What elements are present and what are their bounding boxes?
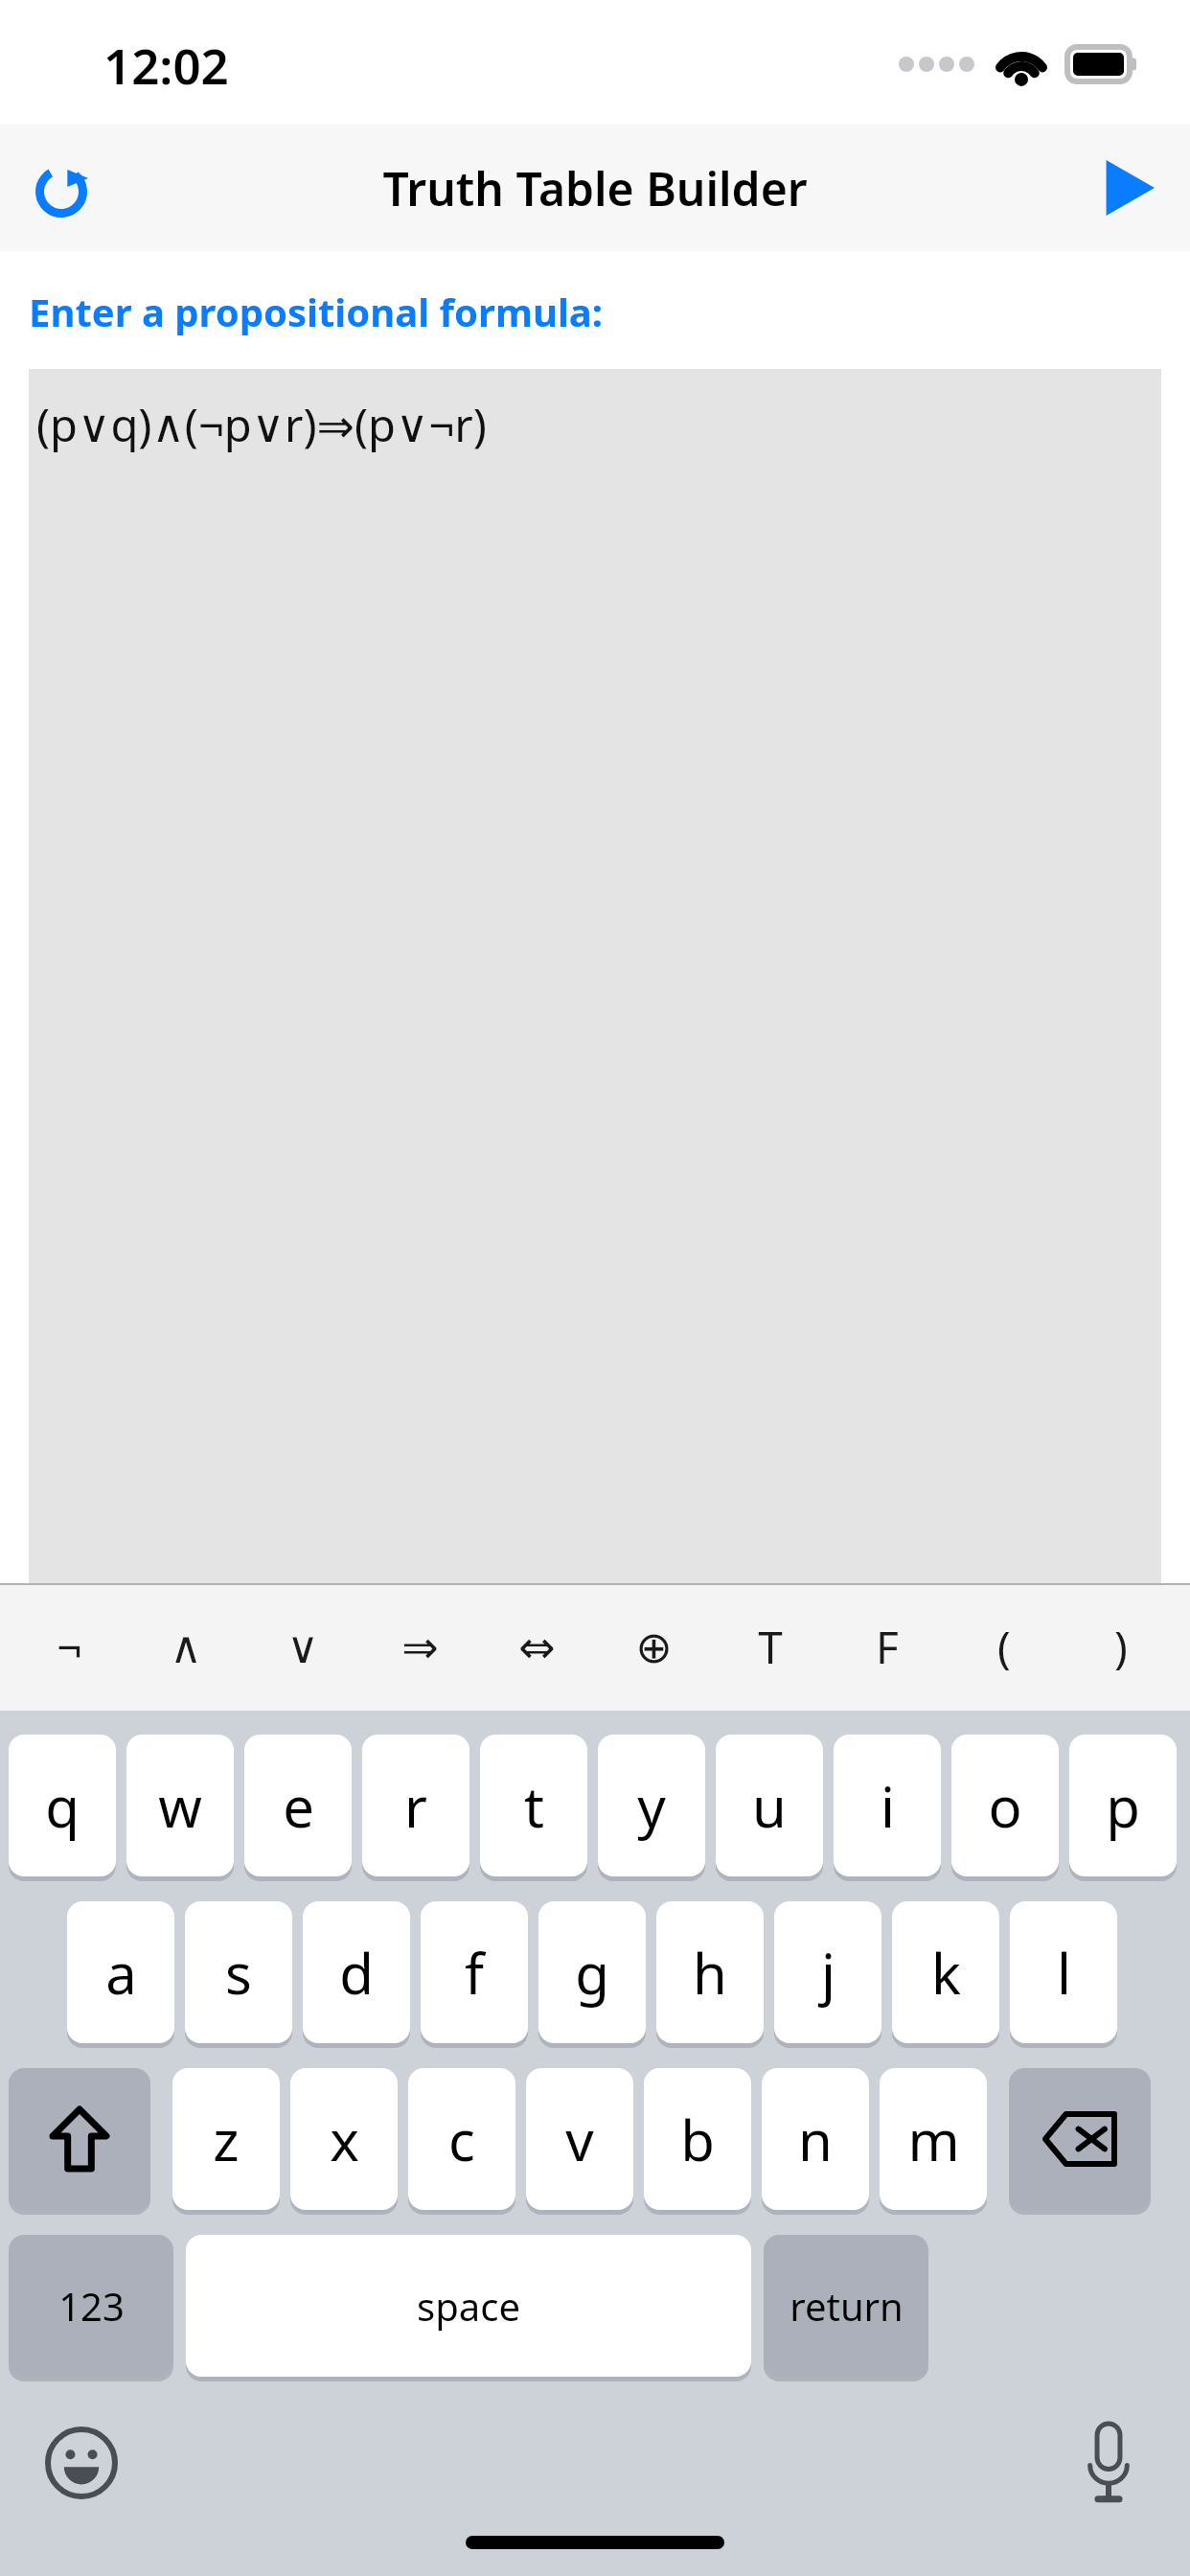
staticText: return <box>790 2280 904 2332</box>
staticText: y <box>637 1768 666 1844</box>
button[interactable]: i <box>834 1735 941 1876</box>
staticText: i <box>881 1768 895 1844</box>
button[interactable]: x <box>290 2068 398 2210</box>
staticText: g <box>575 1935 609 2011</box>
staticText: h <box>693 1935 727 2011</box>
staticText: ¬ <box>57 1617 82 1677</box>
button[interactable]: f <box>421 1901 528 2043</box>
staticText: ∧ <box>170 1621 202 1673</box>
button[interactable]: ∧ <box>132 1583 240 1711</box>
staticText: Truth Table Builder <box>382 157 808 219</box>
button[interactable]: e <box>244 1735 352 1876</box>
button[interactable]: v <box>526 2068 633 2210</box>
button[interactable]: return <box>764 2235 928 2377</box>
staticText: o <box>988 1768 1022 1844</box>
staticText: t <box>524 1768 544 1844</box>
button[interactable]: z <box>172 2068 280 2210</box>
button[interactable]: F <box>834 1583 941 1711</box>
button[interactable]: m <box>880 2068 987 2210</box>
button[interactable]: Emoji <box>29 2410 134 2516</box>
staticText: q <box>45 1768 80 1844</box>
button[interactable]: a <box>67 1901 174 2043</box>
staticText: e <box>283 1768 314 1844</box>
button[interactable]: r <box>362 1735 469 1876</box>
staticText: Enter a propositional formula: <box>29 286 604 337</box>
button[interactable]: ⇔ <box>483 1583 590 1711</box>
staticText: x <box>330 2102 359 2177</box>
button[interactable]: l <box>1010 1901 1117 2043</box>
staticText: v <box>565 2102 594 2177</box>
staticText: d <box>339 1935 374 2011</box>
button[interactable]: ( <box>950 1583 1058 1711</box>
staticText: a <box>105 1935 137 2011</box>
button[interactable]: p <box>1069 1735 1177 1876</box>
staticText: F <box>876 1617 899 1677</box>
button[interactable]: (p∨q)∧(¬p∨r)⇒(p∨¬r) <box>29 369 1161 2576</box>
button[interactable]: t <box>480 1735 587 1876</box>
button[interactable]: q <box>9 1735 116 1876</box>
staticText: ⇒ <box>401 1621 439 1673</box>
button[interactable]: T <box>717 1583 824 1711</box>
button[interactable]: g <box>538 1901 646 2043</box>
button[interactable]: ¬ <box>15 1583 123 1711</box>
staticText: T <box>758 1617 783 1677</box>
button[interactable]: u <box>716 1735 823 1876</box>
staticText: s <box>225 1935 252 2011</box>
staticText: 123 <box>58 2280 125 2332</box>
staticText: (p∨q)∧(¬p∨r)⇒(p∨¬r) <box>36 394 487 455</box>
staticText: ⇔ <box>518 1621 556 1673</box>
staticText: ( <box>997 1617 1011 1677</box>
button[interactable]: Run <box>1079 140 1175 236</box>
staticText: ∨ <box>286 1621 319 1673</box>
staticText: u <box>752 1768 787 1844</box>
button[interactable]: n <box>762 2068 869 2210</box>
staticText: w <box>158 1768 202 1844</box>
staticText: l <box>1057 1935 1071 2011</box>
button[interactable]: Dictation <box>1056 2410 1161 2516</box>
button[interactable]: y <box>598 1735 705 1876</box>
staticText: p <box>1106 1768 1140 1844</box>
button[interactable]: Backspace <box>1009 2068 1151 2210</box>
button[interactable]: 123 <box>9 2235 173 2377</box>
button[interactable]: ⇒ <box>366 1583 473 1711</box>
button[interactable]: b <box>644 2068 751 2210</box>
staticText: j <box>821 1935 835 2011</box>
button[interactable]: Shift <box>9 2068 150 2210</box>
button[interactable]: h <box>656 1901 764 2043</box>
staticText: 12:02 <box>103 32 229 98</box>
button[interactable]: s <box>185 1901 292 2043</box>
staticText: k <box>931 1935 961 2011</box>
button[interactable]: o <box>951 1735 1059 1876</box>
staticText: z <box>213 2102 240 2177</box>
button[interactable]: c <box>408 2068 515 2210</box>
staticText: space <box>417 2280 520 2332</box>
button[interactable]: j <box>774 1901 881 2043</box>
staticText: b <box>680 2102 715 2177</box>
staticText: ⊕ <box>635 1621 673 1673</box>
staticText: c <box>448 2102 475 2177</box>
button[interactable]: ⊕ <box>600 1583 707 1711</box>
button[interactable]: k <box>892 1901 999 2043</box>
button[interactable]: ) <box>1067 1583 1175 1711</box>
staticText: n <box>798 2102 833 2177</box>
button[interactable]: Reload <box>13 140 109 236</box>
staticText: m <box>907 2102 960 2177</box>
button[interactable]: space <box>186 2235 751 2377</box>
button[interactable]: ∨ <box>249 1583 356 1711</box>
staticText: r <box>404 1768 427 1844</box>
button[interactable]: d <box>303 1901 410 2043</box>
button[interactable]: w <box>126 1735 234 1876</box>
staticText: ) <box>1114 1617 1128 1677</box>
staticText: f <box>465 1935 484 2011</box>
